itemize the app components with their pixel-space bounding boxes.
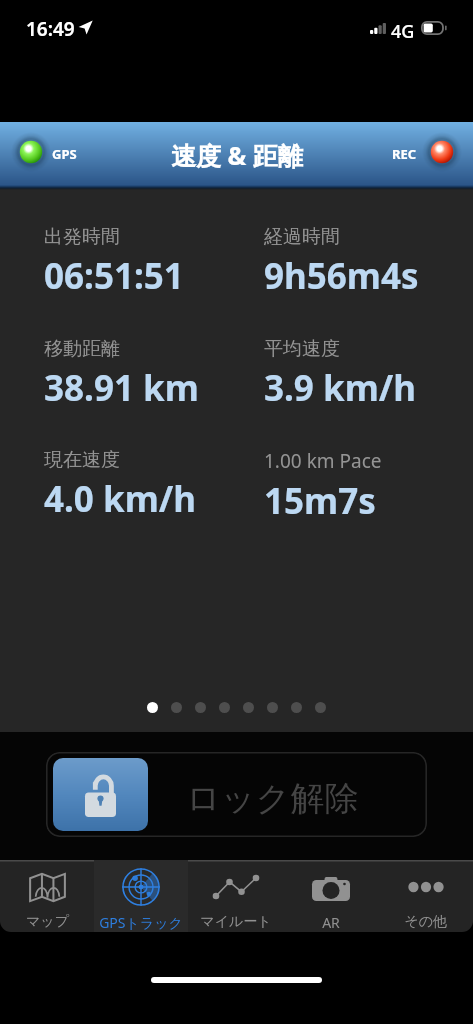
staticText: 移動距離	[44, 337, 120, 361]
staticText: 平均速度	[264, 337, 340, 361]
staticText: GPSトラック	[99, 913, 183, 932]
button[interactable]: AR	[283, 860, 378, 932]
button[interactable]: その他	[378, 860, 473, 932]
staticText: その他	[404, 913, 447, 931]
staticText: AR	[322, 913, 340, 932]
button[interactable]: Unlock	[46, 752, 427, 837]
staticText: 9h56m4s	[264, 252, 419, 300]
staticText: 16:49	[26, 16, 75, 42]
staticText: 4G	[391, 19, 415, 44]
staticText: 06:51:51	[44, 252, 184, 300]
staticText: ロック解除	[186, 777, 359, 820]
staticText: 4.0 km/h	[44, 475, 197, 523]
staticText: 速度 & 距離	[171, 138, 303, 172]
staticText: 現在速度	[44, 448, 120, 472]
staticText: 38.91 km	[44, 364, 199, 412]
other: Unlock	[53, 758, 148, 831]
staticText: 3.9 km/h	[264, 364, 417, 412]
staticText: REC	[392, 145, 417, 163]
staticText: GPS	[52, 145, 77, 163]
button[interactable]: マップ	[0, 860, 94, 932]
button[interactable]: マイルート	[188, 860, 283, 932]
staticText: マイルート	[200, 913, 272, 931]
button[interactable]: GPSトラック	[94, 860, 188, 932]
staticText: 15m7s	[264, 477, 376, 525]
staticText: マップ	[26, 913, 69, 931]
staticText: 出発時間	[44, 225, 120, 249]
staticText: 1.00 km Pace	[264, 448, 382, 474]
staticText: 経過時間	[264, 225, 340, 249]
